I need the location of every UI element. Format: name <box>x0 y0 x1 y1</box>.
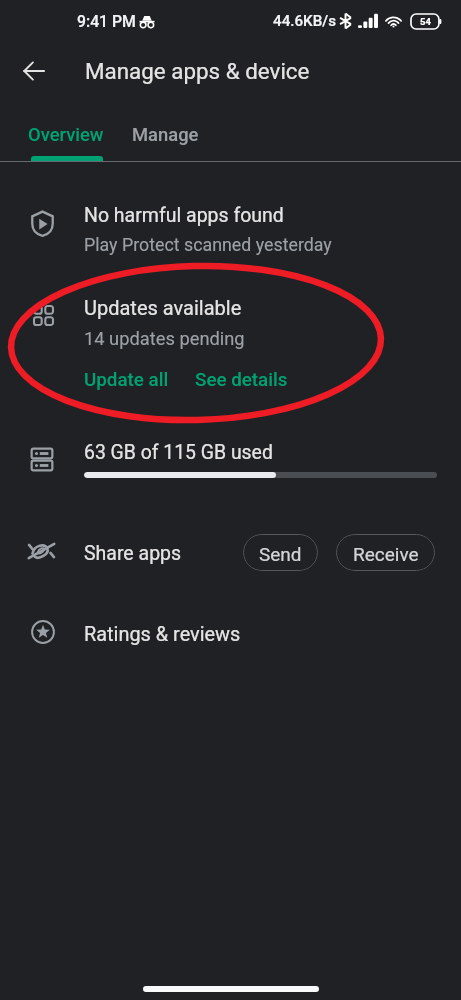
button[interactable]: Back <box>10 47 58 95</box>
staticText: Manage apps & device <box>85 58 310 84</box>
button[interactable]: No harmful apps found <box>0 190 461 258</box>
staticText: Updates available <box>84 296 242 319</box>
button[interactable]: See details <box>189 363 294 397</box>
staticText: 63 GB of 115 GB used <box>84 441 273 464</box>
button[interactable]: Ratings & reviews <box>0 606 461 662</box>
staticText: No harmful apps found <box>84 204 284 227</box>
staticText: Receive <box>353 543 419 565</box>
button[interactable]: Manage <box>114 100 217 161</box>
staticText: 9:41 PM <box>77 12 136 31</box>
staticText: 14 updates pending <box>84 328 245 349</box>
staticText: Play Protect scanned yesterday <box>84 234 332 255</box>
button[interactable]: 63 GB of 115 GB used <box>0 430 461 490</box>
staticText: Send <box>259 543 302 565</box>
staticText: Share apps <box>84 542 182 565</box>
button[interactable]: Receive <box>336 534 435 571</box>
staticText: Ratings & reviews <box>84 623 241 646</box>
staticText: See details <box>195 369 288 391</box>
button[interactable]: Updates available <box>0 282 461 350</box>
staticText: Manage <box>132 124 199 146</box>
staticText: Overview <box>28 124 104 146</box>
button[interactable]: Update all <box>78 363 175 397</box>
button[interactable]: Send <box>243 534 318 571</box>
staticText: 54 <box>420 16 431 27</box>
staticText: Update all <box>84 369 169 391</box>
button[interactable]: Overview <box>10 100 122 161</box>
staticText: 44.6KB/s <box>273 12 337 30</box>
